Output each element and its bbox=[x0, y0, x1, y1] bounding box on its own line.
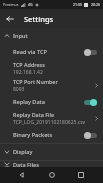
button[interactable]: Data Files bbox=[0, 161, 103, 167]
button[interactable]: TCP Port Number bbox=[0, 77, 103, 94]
button[interactable]: Input bbox=[0, 28, 103, 44]
staticText: Display bbox=[13, 148, 33, 156]
button[interactable]: Display bbox=[0, 144, 103, 160]
staticText: 20:26 bbox=[91, 2, 100, 7]
button[interactable]: Home bbox=[44, 167, 60, 183]
staticText: TCP_LOG_20191102180625.csv bbox=[13, 119, 86, 126]
staticText: Input bbox=[13, 32, 28, 40]
staticText: 8093 bbox=[13, 86, 25, 93]
button[interactable]: Back bbox=[14, 167, 30, 183]
staticText: Binary Packets bbox=[13, 131, 84, 139]
staticText: TCP Port Number bbox=[13, 78, 58, 85]
button[interactable]: Recent apps bbox=[73, 167, 89, 183]
staticText: Read via TCP bbox=[13, 48, 84, 56]
button[interactable]: Read via TCP bbox=[0, 44, 103, 60]
staticText: Replay Data File bbox=[13, 111, 55, 118]
staticText: 21:05 bbox=[73, 2, 82, 7]
button[interactable]: Replay Data File bbox=[0, 110, 103, 127]
staticText: Proximus bbox=[3, 2, 19, 7]
staticText: Replay Data bbox=[13, 98, 84, 106]
button[interactable]: Binary Packets bbox=[0, 127, 103, 143]
staticText: TCP Address bbox=[13, 61, 45, 68]
staticText: 192.168.1.42 bbox=[13, 69, 43, 76]
button[interactable]: Back bbox=[0, 9, 19, 28]
staticText: Settings bbox=[24, 14, 54, 24]
button[interactable]: TCP Address bbox=[0, 60, 103, 77]
staticText: 4G bbox=[28, 2, 33, 7]
button[interactable]: Replay Data bbox=[0, 94, 103, 110]
staticText: Data Files bbox=[13, 161, 39, 167]
